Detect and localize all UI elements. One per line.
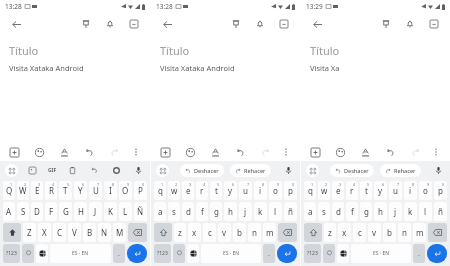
button[interactable]: x — [338, 223, 351, 242]
button[interactable]: U — [89, 181, 102, 200]
button[interactable]: g — [360, 202, 372, 221]
button[interactable]: Text format — [358, 145, 372, 159]
button[interactable]: B — [83, 223, 96, 242]
button[interactable]: Language — [337, 244, 349, 263]
button[interactable]: Ñ — [134, 202, 147, 221]
button[interactable]: Palette — [333, 145, 347, 159]
button[interactable]: q — [154, 181, 166, 200]
button[interactable]: Emoji — [323, 244, 335, 263]
button[interactable]: Emoji — [173, 244, 185, 263]
button[interactable]: b — [383, 223, 396, 242]
button[interactable]: Shift — [154, 223, 172, 242]
button[interactable]: Shift — [3, 223, 21, 242]
button[interactable]: w — [318, 181, 330, 200]
button[interactable]: p — [284, 181, 297, 200]
button[interactable]: t — [360, 181, 372, 200]
button[interactable]: Text format — [57, 145, 71, 159]
button[interactable]: C — [53, 223, 66, 242]
button[interactable]: g — [210, 202, 222, 221]
button[interactable]: Add — [158, 145, 172, 159]
button[interactable]: Settings — [110, 164, 123, 177]
button[interactable]: F — [45, 202, 57, 221]
button[interactable]: Voice input — [432, 164, 445, 177]
button[interactable]: Undo — [88, 164, 101, 177]
button[interactable]: y — [374, 181, 387, 200]
button[interactable]: Enter — [427, 244, 447, 263]
button[interactable]: V — [68, 223, 81, 242]
button[interactable]: k — [404, 202, 417, 221]
button[interactable]: N — [98, 223, 111, 242]
button[interactable]: Enter — [127, 244, 147, 263]
button[interactable]: Clipboard — [66, 164, 79, 177]
button[interactable]: I — [104, 181, 117, 200]
button[interactable]: Backspace — [428, 223, 447, 242]
button[interactable]: D — [31, 202, 43, 221]
button[interactable]: Rehacer — [235, 164, 266, 177]
button[interactable]: d — [182, 202, 194, 221]
button[interactable]: . — [263, 244, 275, 263]
button[interactable]: Backspace — [128, 223, 147, 242]
button[interactable]: P — [134, 181, 147, 200]
button[interactable]: Y — [74, 181, 87, 200]
button[interactable]: G — [59, 202, 72, 221]
button[interactable]: s — [318, 202, 330, 221]
button[interactable]: Redo — [408, 145, 422, 159]
button[interactable]: Toolbar — [306, 164, 319, 177]
button[interactable]: E — [31, 181, 43, 200]
button[interactable]: Deshacer — [335, 164, 369, 177]
button[interactable]: Language — [36, 244, 48, 263]
button[interactable]: More options — [429, 145, 443, 159]
button[interactable]: W — [17, 181, 29, 200]
button[interactable]: k — [254, 202, 267, 221]
button[interactable]: Voice input — [282, 164, 295, 177]
button[interactable]: c — [353, 223, 366, 242]
button[interactable]: n — [248, 223, 261, 242]
button[interactable]: K — [104, 202, 117, 221]
button[interactable]: e — [182, 181, 194, 200]
button[interactable]: ñ — [284, 202, 297, 221]
button[interactable]: Redo — [258, 145, 272, 159]
button[interactable]: l — [419, 202, 432, 221]
button[interactable]: h — [224, 202, 237, 221]
button[interactable]: m — [413, 223, 426, 242]
button[interactable]: Shift — [304, 223, 322, 242]
button[interactable]: z — [324, 223, 336, 242]
button[interactable]: f — [196, 202, 208, 221]
button[interactable]: . — [413, 244, 425, 263]
button[interactable]: Palette — [32, 145, 46, 159]
button[interactable]: u — [239, 181, 252, 200]
button[interactable]: o — [269, 181, 282, 200]
button[interactable]: Voice input — [132, 164, 145, 177]
button[interactable]: t — [210, 181, 222, 200]
button[interactable]: Toolbar — [5, 164, 18, 177]
button[interactable]: Archive — [276, 16, 292, 32]
button[interactable]: h — [374, 202, 387, 221]
button[interactable]: Backspace — [278, 223, 297, 242]
button[interactable]: m — [263, 223, 276, 242]
button[interactable]: Q — [3, 181, 15, 200]
button[interactable]: ES · EN — [50, 244, 111, 263]
button[interactable]: Sticker — [26, 164, 39, 177]
button[interactable]: r — [346, 181, 358, 200]
button[interactable]: J — [89, 202, 102, 221]
button[interactable]: More options — [279, 145, 293, 159]
button[interactable]: v — [218, 223, 231, 242]
button[interactable]: Emoji — [22, 244, 34, 263]
button[interactable]: More options — [129, 145, 143, 159]
button[interactable]: Deshacer — [185, 164, 219, 177]
button[interactable]: b — [233, 223, 246, 242]
button[interactable]: ES · EN — [201, 244, 261, 263]
button[interactable]: w — [168, 181, 180, 200]
button[interactable]: Reminder — [402, 16, 418, 32]
button[interactable]: Z — [23, 223, 36, 242]
button[interactable]: a — [154, 202, 166, 221]
button[interactable]: Reminder — [252, 16, 268, 32]
button[interactable]: Archive — [126, 16, 142, 32]
button[interactable]: Undo — [233, 145, 247, 159]
button[interactable]: S — [17, 202, 29, 221]
button[interactable]: ?123 — [3, 244, 20, 263]
button[interactable]: Add — [308, 145, 322, 159]
button[interactable]: i — [254, 181, 267, 200]
button[interactable]: Reminder — [102, 16, 118, 32]
button[interactable]: l — [269, 202, 282, 221]
